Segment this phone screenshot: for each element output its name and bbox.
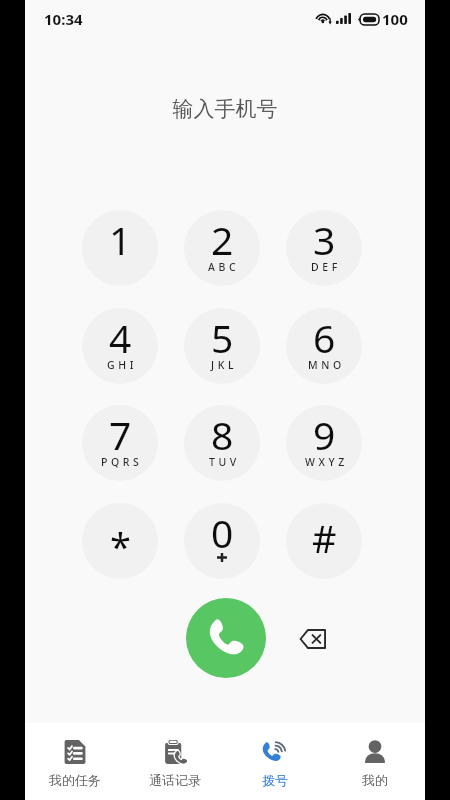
staticText: 0 — [211, 506, 234, 559]
staticText: ABC — [208, 260, 240, 274]
button[interactable]: 7 — [82, 405, 158, 481]
staticText: PQRS — [101, 455, 143, 469]
button[interactable]: 5 — [184, 308, 260, 384]
button[interactable]: 我的任务 — [25, 723, 125, 800]
staticText: 5 — [211, 311, 234, 364]
staticText: # — [312, 512, 337, 564]
button[interactable]: Call — [186, 598, 266, 678]
button[interactable]: 拨号 — [225, 723, 325, 800]
staticText: 输入手机号 — [25, 96, 425, 122]
button[interactable]: 通话记录 — [125, 723, 225, 800]
staticText: 10:34 — [44, 9, 83, 29]
button[interactable]: 8 — [184, 405, 260, 481]
button[interactable]: 我的 — [325, 723, 425, 800]
button[interactable]: * — [82, 503, 158, 579]
staticText: GHI — [107, 358, 138, 372]
button[interactable]: 9 — [286, 405, 362, 481]
staticText: 1 — [109, 213, 132, 266]
button[interactable]: 2 — [184, 210, 260, 286]
staticText: 7 — [109, 408, 132, 461]
staticText: 3 — [313, 213, 336, 266]
staticText: 8 — [211, 408, 234, 461]
staticText: WXYZ — [305, 455, 348, 469]
staticText: 拨号 — [262, 772, 288, 788]
staticText: 100 — [382, 9, 408, 29]
button[interactable]: 0 — [184, 503, 260, 579]
button[interactable]: 1 — [82, 210, 158, 286]
staticText: 我的任务 — [49, 772, 101, 788]
button[interactable]: 3 — [286, 210, 362, 286]
staticText: DEF — [311, 260, 341, 274]
staticText: 6 — [313, 311, 336, 364]
staticText: 9 — [313, 408, 336, 461]
button[interactable]: Backspace — [286, 613, 338, 665]
button[interactable]: 4 — [82, 308, 158, 384]
staticText: 4 — [109, 311, 132, 364]
staticText: TUV — [209, 455, 240, 469]
staticText: * — [110, 520, 131, 572]
staticText: 2 — [211, 213, 234, 266]
button[interactable]: # — [286, 503, 362, 579]
staticText: MNO — [308, 358, 345, 372]
staticText: 通话记录 — [149, 772, 201, 788]
staticText: 我的 — [362, 772, 388, 788]
staticText: JKL — [211, 358, 238, 372]
button[interactable]: 6 — [286, 308, 362, 384]
